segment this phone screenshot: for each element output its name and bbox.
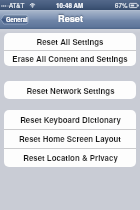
staticText: Reset All Settings <box>36 36 104 47</box>
staticText: Reset Keyboard Dictionary <box>20 114 121 125</box>
button[interactable]: Erase All Content and Settings <box>4 50 136 66</box>
button[interactable]: Reset Home Screen Layout <box>4 129 136 148</box>
staticText: Reset Home Screen Layout <box>19 133 121 144</box>
button[interactable]: Reset Location & Privacy <box>4 148 136 167</box>
staticText: Reset <box>58 12 83 25</box>
staticText: Reset Network Settings <box>26 85 115 96</box>
staticText: Reset Location & Privacy <box>23 152 118 163</box>
button[interactable]: Reset Network Settings <box>4 81 136 99</box>
staticText: 10:48 AM <box>56 1 84 10</box>
staticText: Erase All Content and Settings <box>12 53 128 64</box>
button[interactable]: Reset All Settings <box>4 33 136 50</box>
staticText: 67% <box>115 1 128 10</box>
button[interactable]: Back to General <box>1 15 28 24</box>
button[interactable]: Reset Keyboard Dictionary <box>4 110 136 129</box>
staticText: General <box>6 15 28 23</box>
staticText: AT&T <box>9 1 25 10</box>
